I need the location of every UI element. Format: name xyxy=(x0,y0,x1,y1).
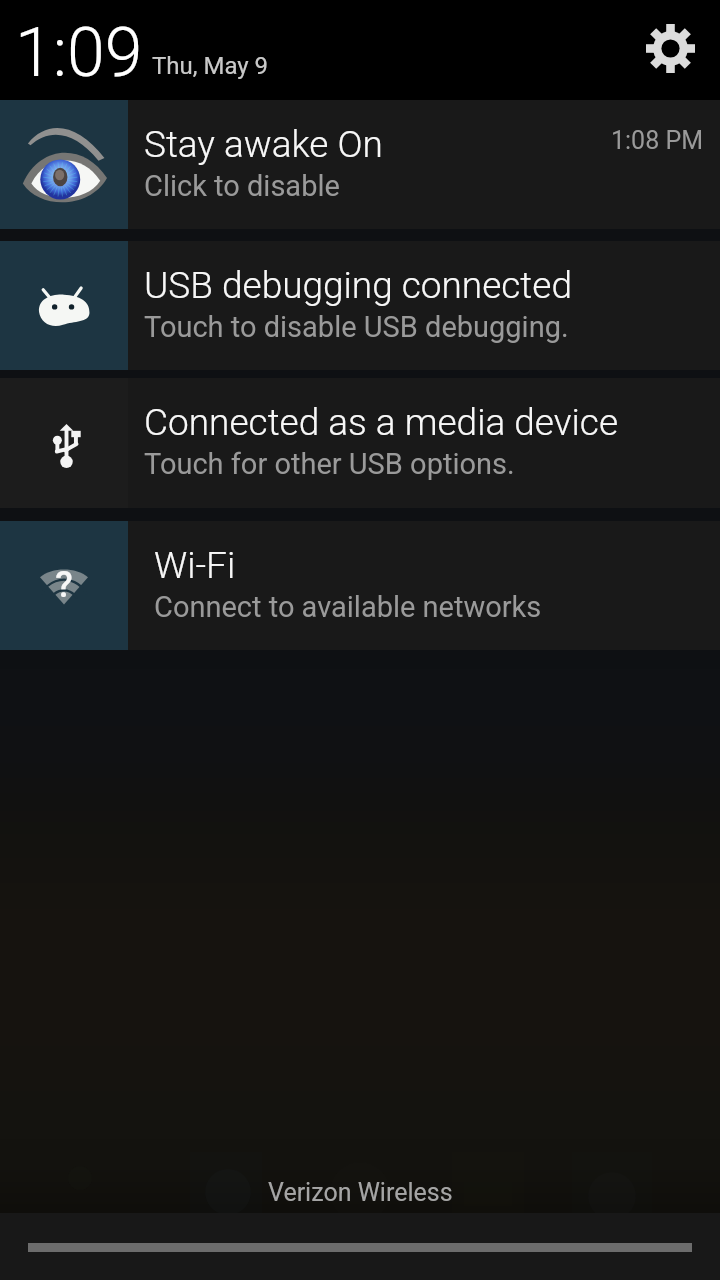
button[interactable]: Stay awake On xyxy=(0,100,720,229)
button[interactable]: USB debugging connected xyxy=(0,241,720,370)
button[interactable]: Connected as a media device xyxy=(0,378,720,508)
staticText: Connected as a media device xyxy=(144,401,619,444)
button[interactable]: Settings xyxy=(640,18,700,78)
staticText: Verizon Wireless xyxy=(268,1178,453,1207)
staticText: 1:08 PM xyxy=(611,126,704,155)
staticText: USB debugging connected xyxy=(144,264,572,307)
staticText: Thu, May 9 xyxy=(152,52,269,80)
staticText: Wi-Fi xyxy=(154,544,236,587)
staticText: Click to disable xyxy=(144,169,340,203)
staticText: ? xyxy=(55,564,73,602)
staticText: Touch for other USB options. xyxy=(144,447,515,481)
button[interactable]: ? xyxy=(0,521,720,650)
staticText: Stay awake On xyxy=(144,123,383,166)
staticText: Connect to available networks xyxy=(154,590,542,624)
staticText: Touch to disable USB debugging. xyxy=(144,310,569,344)
staticText: 1:09 xyxy=(15,13,143,93)
